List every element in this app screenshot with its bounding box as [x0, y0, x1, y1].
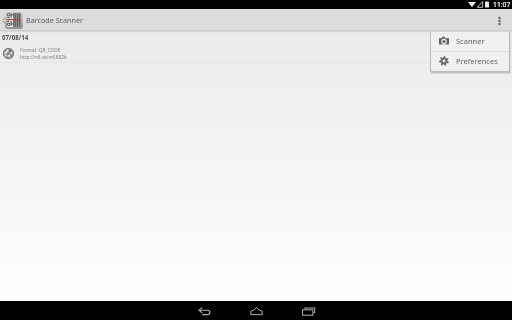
staticText: http://rdl.se/mSK82k [20, 54, 67, 61]
button[interactable]: Scanner [431, 32, 509, 51]
button[interactable]: More options [488, 9, 512, 30]
staticText: 11:07 [493, 0, 511, 9]
button[interactable]: Recent apps [286, 301, 330, 320]
staticText: Format: QR_CODE [20, 47, 61, 54]
button[interactable]: Back [182, 301, 226, 320]
staticText: Scanner [456, 36, 485, 46]
staticText: 07/08/14 [2, 33, 29, 41]
button[interactable]: Barcode Scanner [0, 9, 84, 30]
button[interactable]: Format: QR_CODE [0, 45, 512, 62]
button[interactable]: Preferences [431, 52, 509, 71]
staticText: Barcode Scanner [26, 15, 84, 25]
staticText: Preferences [456, 56, 498, 66]
button[interactable]: Home [234, 301, 278, 320]
